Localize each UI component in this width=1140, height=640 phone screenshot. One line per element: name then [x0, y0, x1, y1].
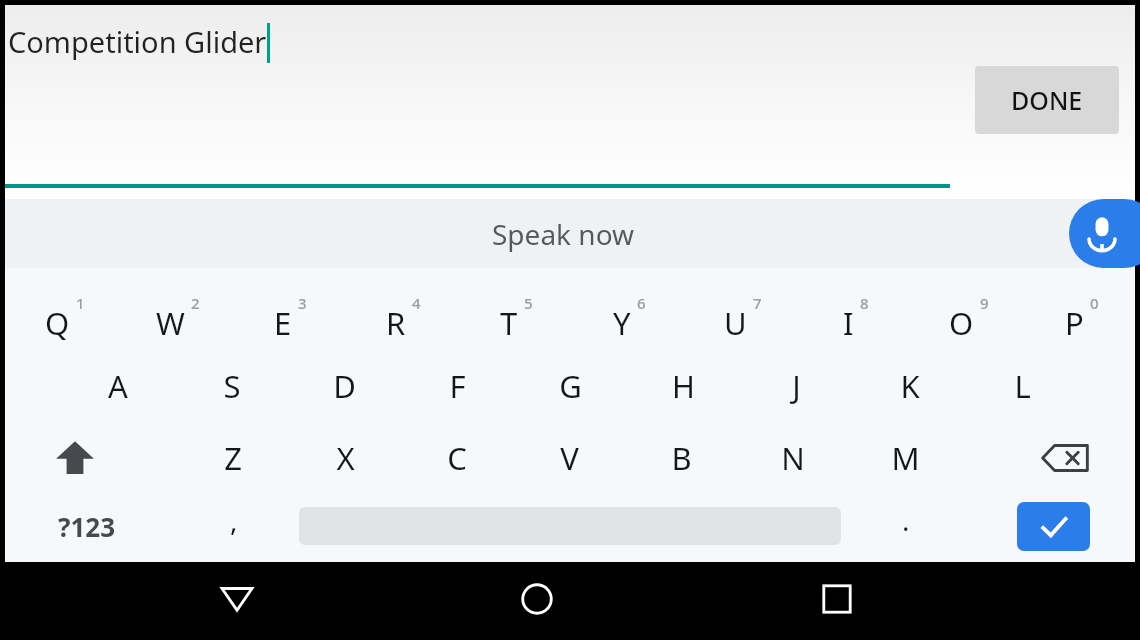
staticText: D	[333, 365, 356, 407]
staticText: G	[559, 365, 582, 407]
button[interactable]: R	[344, 278, 457, 350]
staticText: K	[900, 365, 920, 407]
button[interactable]: D	[288, 350, 401, 422]
staticText: J	[792, 365, 801, 407]
button[interactable]: Recent apps	[792, 562, 882, 640]
button[interactable]: N	[737, 422, 849, 494]
staticText: T	[500, 302, 518, 344]
button[interactable]: Backspace	[995, 422, 1135, 494]
staticText: Q	[45, 302, 70, 344]
button[interactable]: P	[1022, 278, 1135, 350]
button[interactable]: Enter	[1017, 502, 1090, 551]
staticText: 5	[524, 293, 533, 313]
staticText: 1	[76, 293, 85, 313]
staticText: F	[449, 365, 466, 407]
button[interactable]: ,	[169, 494, 299, 558]
button[interactable]: O	[909, 278, 1022, 350]
staticText: M	[891, 437, 920, 479]
button[interactable]: I	[796, 278, 909, 350]
staticText: A	[108, 365, 128, 407]
staticText: 8	[860, 293, 869, 313]
button[interactable]: M	[849, 422, 961, 494]
button[interactable]: X	[289, 422, 401, 494]
button[interactable]: Y	[570, 278, 683, 350]
button[interactable]: H	[627, 350, 740, 422]
staticText: O	[949, 302, 974, 344]
button[interactable]: .	[841, 494, 971, 558]
button[interactable]: A	[61, 350, 175, 422]
staticText: V	[560, 437, 579, 479]
button[interactable]: J	[740, 350, 853, 422]
staticText: DONE	[1011, 83, 1083, 117]
button[interactable]: Q	[5, 278, 118, 350]
staticText: S	[223, 365, 241, 407]
staticText: 9	[980, 293, 989, 313]
button[interactable]: Shift	[5, 422, 144, 494]
staticText: B	[671, 437, 692, 479]
staticText: P	[1065, 302, 1084, 344]
staticText: C	[447, 437, 467, 479]
button[interactable]: T	[457, 278, 570, 350]
staticText: N	[781, 437, 805, 479]
staticText: 7	[753, 293, 762, 313]
staticText: L	[1014, 365, 1031, 407]
button[interactable]: Home	[492, 562, 582, 640]
staticText: 4	[412, 293, 421, 313]
button[interactable]: Competition Glider	[8, 21, 270, 61]
button[interactable]: ?123	[5, 494, 169, 558]
button[interactable]: E	[231, 278, 344, 350]
staticText: 3	[298, 293, 307, 313]
button[interactable]: G	[514, 350, 627, 422]
staticText: H	[672, 365, 695, 407]
staticText: E	[274, 302, 292, 344]
button[interactable]: U	[683, 278, 796, 350]
staticText: X	[336, 437, 355, 479]
staticText: Competition Glider	[8, 22, 267, 61]
staticText: 6	[637, 293, 646, 313]
staticText: W	[156, 302, 185, 344]
button[interactable]: Speak now	[5, 199, 1135, 268]
staticText: ?123	[58, 509, 116, 544]
staticText: ,	[230, 501, 238, 539]
button[interactable]: K	[853, 350, 966, 422]
button[interactable]: S	[175, 350, 288, 422]
button[interactable]: Back	[192, 562, 282, 640]
button[interactable]: F	[401, 350, 514, 422]
staticText: Y	[613, 302, 631, 344]
staticText: 0	[1090, 293, 1099, 313]
button[interactable]: C	[401, 422, 513, 494]
button[interactable]: V	[513, 422, 625, 494]
staticText: R	[386, 302, 406, 344]
staticText: U	[724, 302, 747, 344]
staticText: Z	[224, 437, 242, 479]
button[interactable]: Voice input	[1069, 199, 1140, 268]
button[interactable]: Z	[177, 422, 289, 494]
button[interactable]: DONE	[975, 66, 1119, 134]
button[interactable]: L	[966, 350, 1079, 422]
staticText: 2	[191, 293, 200, 313]
staticText: I	[843, 302, 854, 344]
staticText: .	[902, 501, 910, 539]
staticText: Speak now	[492, 215, 635, 253]
button[interactable]: W	[118, 278, 231, 350]
button[interactable]: B	[625, 422, 737, 494]
